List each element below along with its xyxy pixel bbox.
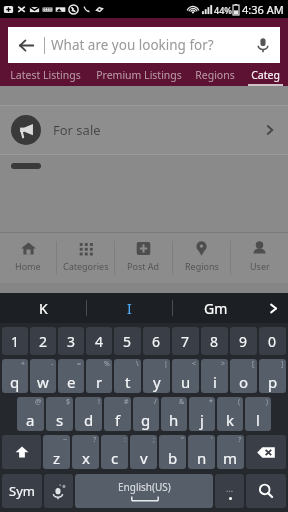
staticText: 8 bbox=[210, 332, 219, 351]
button[interactable]: - bbox=[30, 359, 56, 393]
staticText: 2 bbox=[39, 332, 48, 351]
button[interactable]: 6 bbox=[143, 327, 170, 355]
staticText: u bbox=[181, 372, 191, 392]
staticText: 0 bbox=[268, 332, 277, 351]
button[interactable]: | bbox=[143, 359, 170, 393]
staticText: # bbox=[124, 397, 129, 407]
button[interactable]: ? bbox=[217, 435, 244, 469]
button[interactable]: Search bbox=[246, 474, 286, 508]
staticText: ) bbox=[266, 397, 269, 407]
button[interactable]: Period bbox=[215, 474, 244, 508]
button[interactable]: Categories bbox=[57, 233, 114, 283]
staticText: 4 bbox=[95, 332, 104, 351]
button[interactable]: Gm bbox=[173, 293, 258, 323]
staticText: q bbox=[10, 372, 20, 392]
staticText: Latest Listings bbox=[10, 68, 81, 82]
staticText: $ bbox=[66, 397, 71, 407]
button[interactable]: Premium Listings bbox=[90, 63, 187, 86]
staticText: User bbox=[250, 260, 270, 272]
button[interactable]: : bbox=[101, 435, 128, 469]
staticText: s bbox=[56, 410, 64, 430]
staticText: p bbox=[268, 372, 278, 392]
button[interactable]: @ bbox=[17, 397, 44, 431]
button[interactable]: Regions bbox=[187, 63, 243, 86]
staticText: [ bbox=[252, 359, 255, 369]
staticText: v bbox=[140, 448, 148, 468]
button[interactable]: 5 bbox=[114, 327, 141, 355]
button[interactable]: / bbox=[133, 397, 159, 431]
button[interactable]: More suggestions bbox=[258, 293, 288, 323]
staticText: ] bbox=[281, 359, 284, 369]
button[interactable]: For sale bbox=[0, 106, 288, 154]
button[interactable]: Latest Listings bbox=[0, 63, 90, 86]
button[interactable]: Regions bbox=[173, 233, 230, 283]
button[interactable]: % bbox=[86, 359, 112, 393]
button[interactable]: * bbox=[189, 397, 215, 431]
staticText: ? bbox=[238, 435, 242, 445]
button[interactable]: I bbox=[87, 293, 172, 323]
button[interactable]: Post Ad bbox=[115, 233, 172, 283]
button[interactable]: Voice input settings bbox=[44, 474, 73, 508]
button[interactable]: < bbox=[172, 359, 199, 393]
button[interactable]: Sym bbox=[2, 474, 42, 508]
button[interactable]: Back bbox=[8, 27, 280, 63]
button[interactable]: $ bbox=[46, 397, 73, 431]
staticText: t bbox=[125, 372, 131, 392]
button[interactable]: Backspace bbox=[246, 435, 286, 469]
staticText: w bbox=[37, 372, 49, 392]
button[interactable]: ? bbox=[72, 435, 99, 469]
staticText: ~ bbox=[63, 435, 68, 445]
button[interactable]: ( bbox=[217, 397, 243, 431]
button[interactable]: + bbox=[2, 359, 28, 393]
staticText: 3 bbox=[67, 332, 76, 351]
button[interactable]: Back bbox=[8, 27, 44, 63]
staticText: 7 bbox=[181, 332, 190, 351]
button[interactable]: = bbox=[58, 359, 84, 393]
button[interactable]: # bbox=[104, 397, 131, 431]
staticText: e bbox=[67, 372, 76, 392]
button[interactable]: 9 bbox=[230, 327, 257, 355]
button[interactable]: [ bbox=[230, 359, 257, 393]
button[interactable]: ] bbox=[259, 359, 286, 393]
staticText: ' bbox=[211, 435, 213, 445]
button[interactable]: 7 bbox=[172, 327, 199, 355]
staticText: + bbox=[21, 359, 26, 369]
staticText: 5 bbox=[123, 332, 132, 351]
staticText: z bbox=[53, 448, 61, 468]
staticText: English(US) bbox=[118, 480, 171, 494]
button[interactable]: 1 bbox=[2, 327, 28, 355]
staticText: Home bbox=[15, 260, 41, 272]
button[interactable]: User bbox=[231, 233, 288, 283]
button[interactable]: ~ bbox=[43, 435, 70, 469]
staticText: k bbox=[226, 410, 235, 430]
button[interactable]: Voice search bbox=[246, 28, 280, 62]
button[interactable]: K bbox=[0, 293, 86, 323]
staticText: For sale bbox=[53, 121, 101, 139]
button[interactable]: ; bbox=[130, 435, 157, 469]
staticText: 1 bbox=[11, 332, 20, 351]
staticText: Post Ad bbox=[127, 260, 160, 272]
button[interactable]: > bbox=[201, 359, 228, 393]
button[interactable]: ) bbox=[245, 397, 271, 431]
button[interactable]: 3 bbox=[58, 327, 84, 355]
staticText: ? bbox=[93, 435, 97, 445]
button[interactable]: 2 bbox=[30, 327, 56, 355]
button[interactable]: 8 bbox=[201, 327, 228, 355]
button[interactable]: " bbox=[159, 435, 186, 469]
button[interactable]: Shift bbox=[2, 435, 41, 469]
button[interactable]: Home bbox=[0, 233, 56, 283]
button[interactable]: ' bbox=[188, 435, 215, 469]
staticText: I bbox=[127, 299, 132, 318]
staticText: l bbox=[256, 410, 260, 430]
staticText: 9 bbox=[239, 332, 248, 351]
button[interactable]: \ bbox=[114, 359, 141, 393]
button[interactable]: & bbox=[161, 397, 187, 431]
button[interactable]: Categ bbox=[243, 63, 288, 86]
staticText: f bbox=[115, 410, 121, 430]
staticText: = bbox=[77, 359, 82, 369]
button[interactable]: 4 bbox=[86, 327, 112, 355]
button[interactable]: ! bbox=[75, 397, 102, 431]
button[interactable]: English(US) bbox=[75, 474, 213, 508]
staticText: Regions bbox=[185, 260, 219, 272]
button[interactable]: 0 bbox=[259, 327, 286, 355]
